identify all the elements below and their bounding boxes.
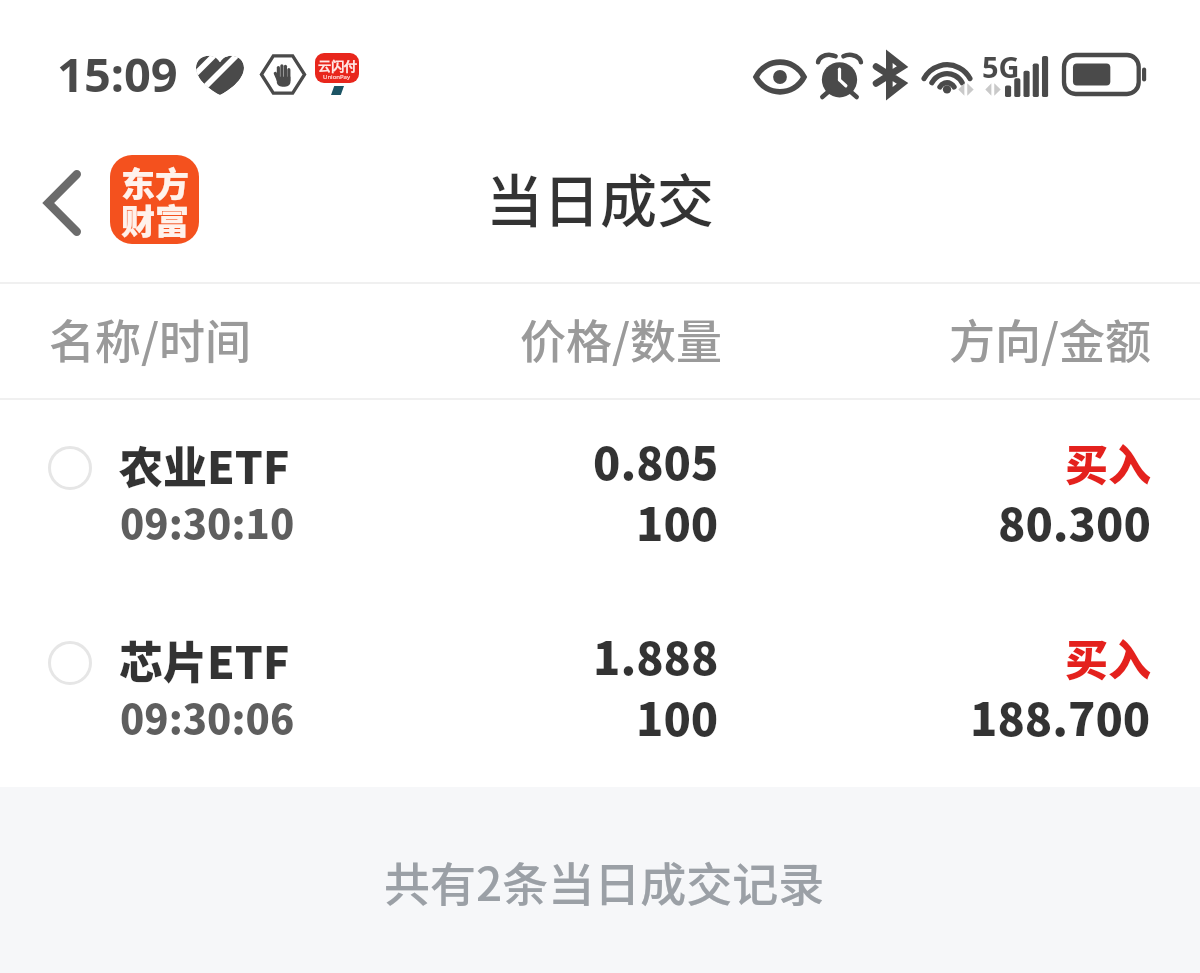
button[interactable]: 农业ETF [0,400,1200,595]
staticText: 财富 [121,195,189,244]
staticText: 0.805 [593,428,719,493]
staticText: UnionPay [323,73,351,81]
staticText: 价格/数量 [520,305,722,372]
button[interactable]: 芯片ETF [0,595,1200,790]
staticText: 农业ETF [119,433,290,497]
staticText: 15:09 [57,42,178,106]
staticText: 买入 [1065,431,1151,493]
staticText: 共有2条当日成交记录 [384,848,825,915]
staticText: 芯片ETF [119,628,290,692]
staticText: 1.888 [593,623,719,688]
staticText: 云闪付 [318,58,357,74]
button[interactable]: Back [0,130,110,282]
staticText: 09:30:10 [120,493,295,551]
button[interactable]: East Money [110,155,199,244]
staticText: 188.700 [970,684,1151,749]
staticText: 100 [636,489,719,554]
staticText: 当日成交 [486,156,714,239]
staticText: 东方 [121,158,189,207]
staticText: 买入 [1065,626,1151,688]
staticText: 5G [982,47,1020,86]
staticText: 方向/金额 [949,305,1151,372]
staticText: 80.300 [998,489,1151,554]
staticText: 100 [636,684,719,749]
staticText: 名称/时间 [49,305,251,372]
staticText: 09:30:06 [120,688,295,746]
